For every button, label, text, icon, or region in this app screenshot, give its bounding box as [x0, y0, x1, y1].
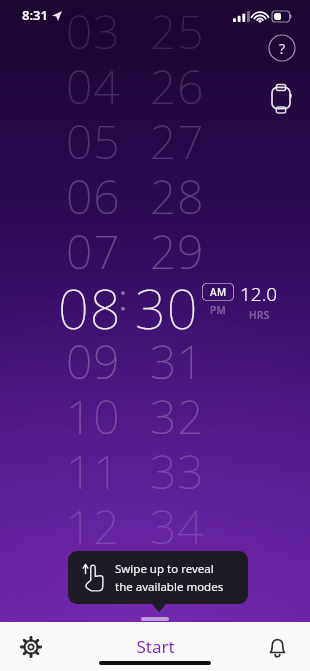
staticText: 34: [150, 495, 205, 549]
staticText: 25: [150, 0, 205, 54]
staticText: 09: [66, 330, 121, 384]
button[interactable]: Connected watch: [266, 79, 296, 117]
staticText: 32: [150, 385, 205, 439]
staticText: 26: [150, 55, 205, 109]
button[interactable]: Settings: [14, 630, 48, 664]
staticText: HRS: [249, 308, 270, 322]
staticText: 07: [66, 220, 121, 274]
staticText: 28: [150, 165, 205, 219]
button[interactable]: 12.0: [240, 281, 278, 322]
button[interactable]: 08: [58, 271, 132, 333]
button[interactable]: Start: [118, 627, 193, 666]
staticText: Start: [136, 635, 175, 658]
button[interactable]: PM: [206, 303, 231, 317]
staticText: 11: [66, 440, 121, 494]
staticText: 27: [150, 110, 205, 164]
staticText: 10: [66, 385, 121, 439]
staticText: Swipe up to reveal: [115, 561, 214, 577]
button[interactable]: Help: [268, 34, 296, 62]
staticText: the available modes: [115, 579, 224, 595]
staticText: 8:31: [22, 6, 48, 24]
staticText: 04: [66, 55, 121, 109]
staticText: 03: [66, 0, 121, 54]
staticText: 12.0: [240, 281, 278, 307]
staticText: ?: [279, 39, 286, 58]
staticText: 06: [66, 165, 121, 219]
staticText: 08: [58, 271, 122, 333]
staticText: PM: [210, 303, 227, 317]
button[interactable]: Alarms: [260, 630, 294, 664]
staticText: 31: [150, 330, 205, 384]
staticText: 30: [135, 271, 199, 333]
staticText: 12: [66, 495, 121, 549]
staticText: 29: [150, 220, 205, 274]
button[interactable]: 30: [135, 271, 209, 333]
button[interactable]: Swipe up to reveal: [68, 551, 248, 604]
button[interactable]: AM: [202, 283, 234, 301]
staticText: 05: [66, 110, 121, 164]
staticText: AM: [210, 285, 227, 299]
staticText: 33: [150, 440, 205, 494]
